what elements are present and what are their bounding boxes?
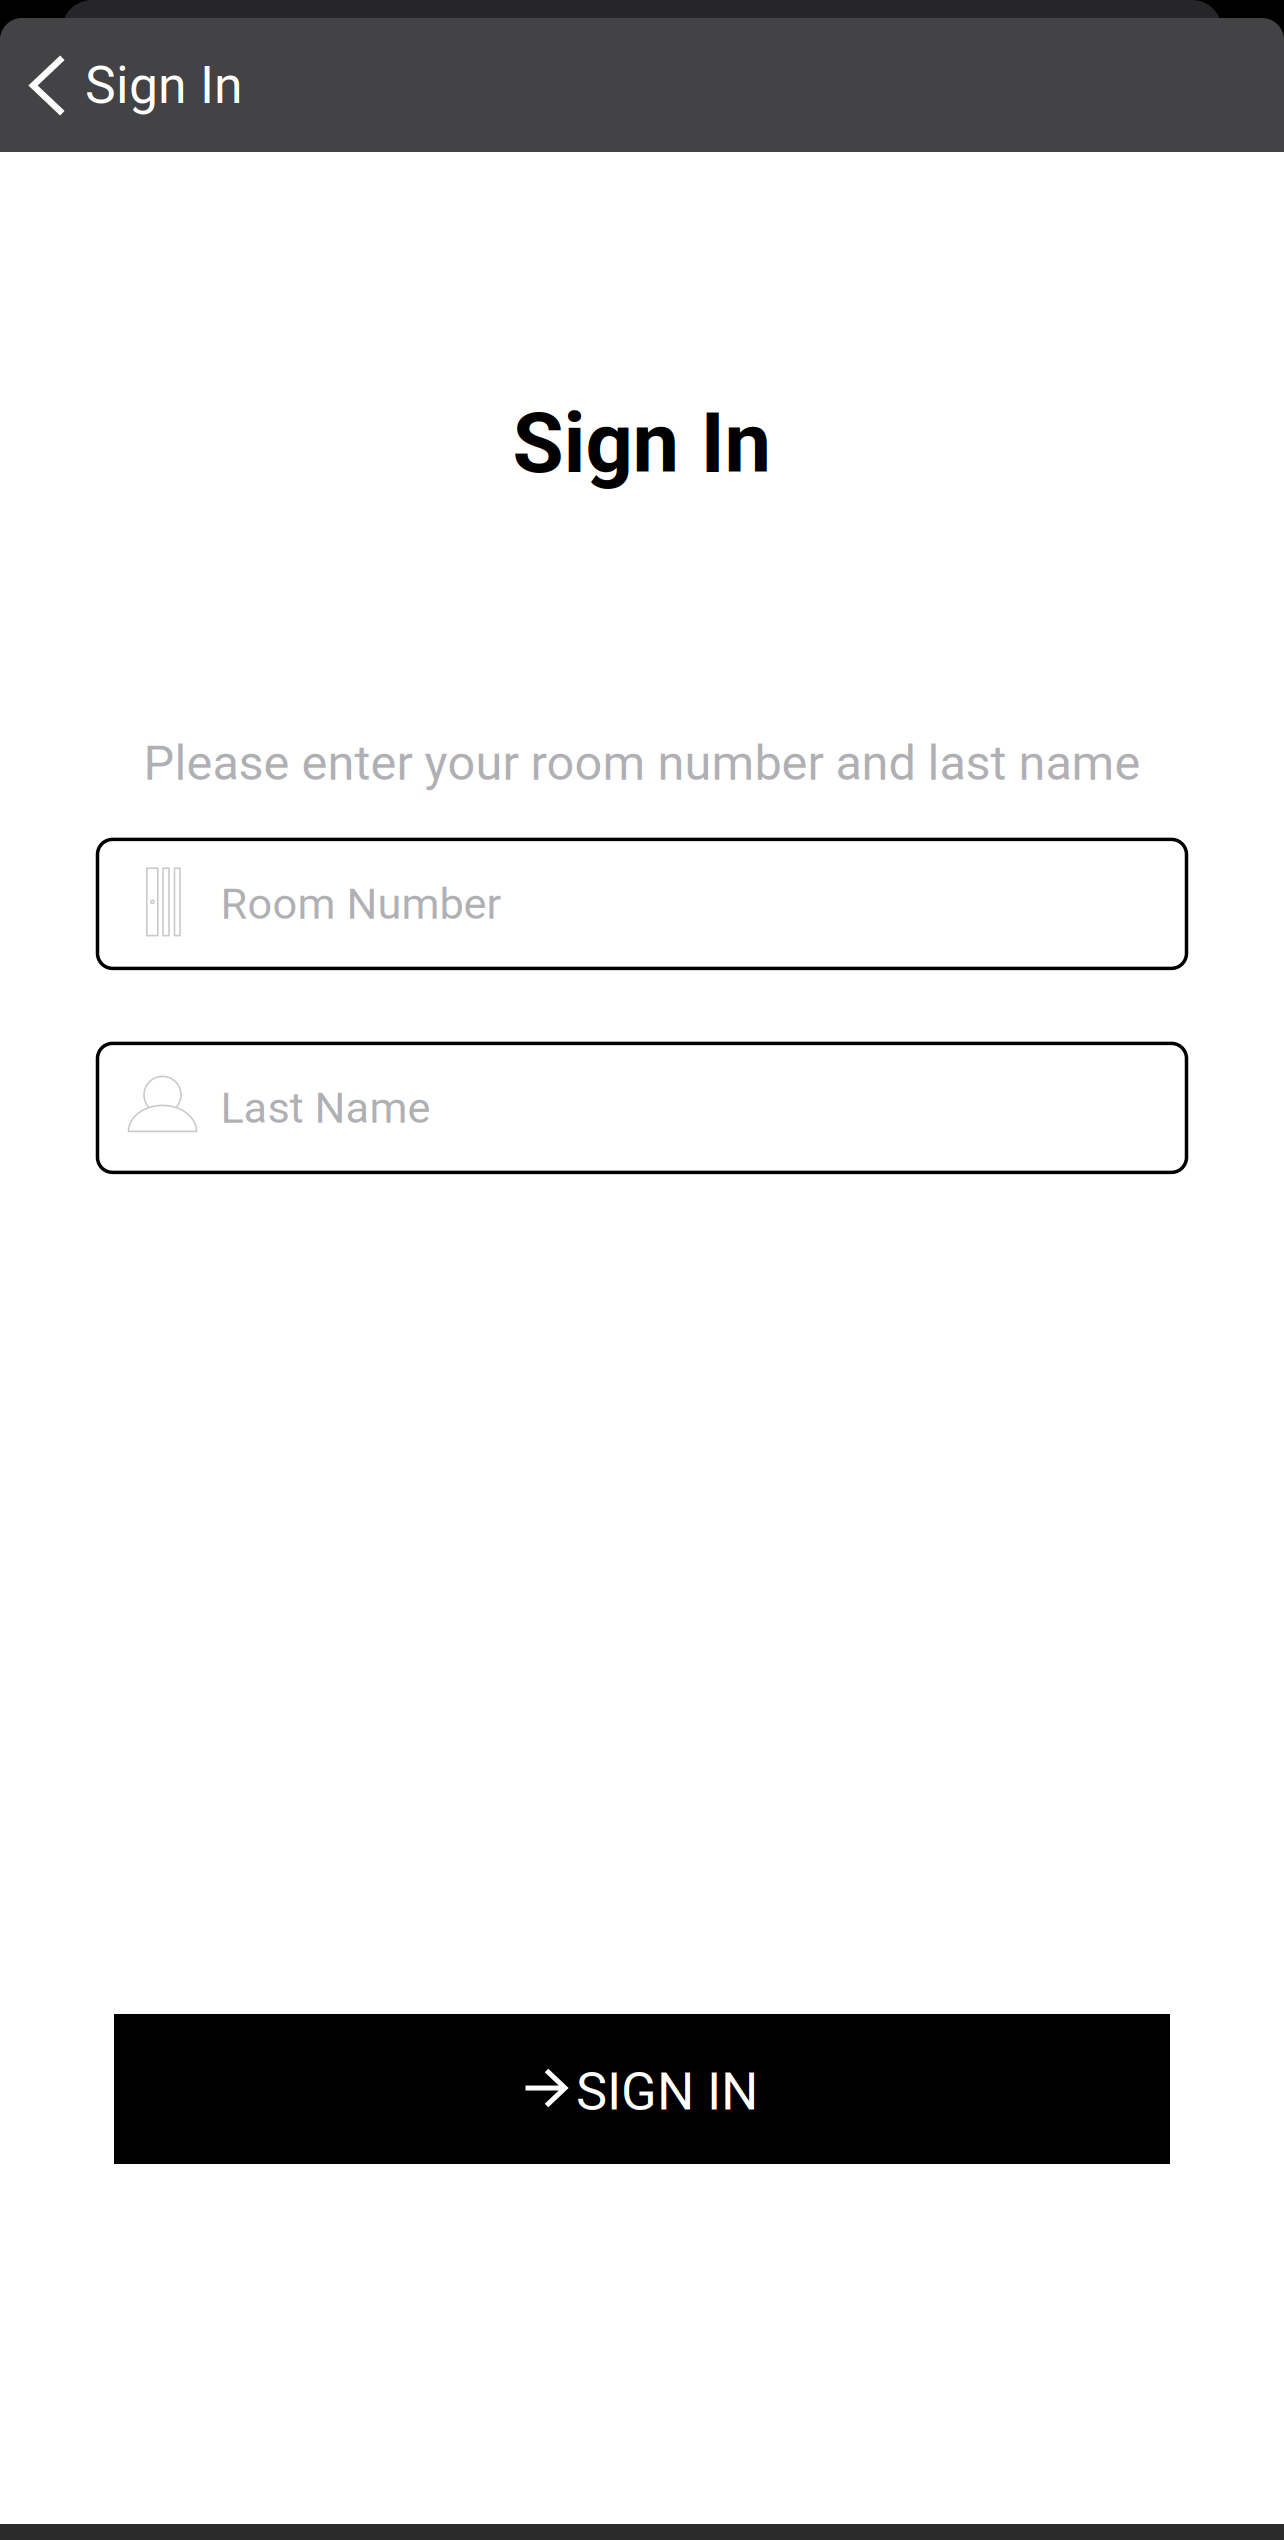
staticText: Sign In	[85, 55, 243, 116]
button[interactable]: Sign In	[0, 36, 256, 152]
staticText: Sign In	[512, 395, 771, 492]
staticText: Please enter your room number and last n…	[143, 734, 1140, 791]
staticText: Room Number	[220, 878, 501, 929]
staticText: Last Name	[220, 1082, 430, 1133]
button[interactable]: SIGN IN	[114, 2014, 1170, 2164]
button[interactable]: Last Name	[97, 1043, 1186, 1172]
staticText: SIGN IN	[576, 2061, 758, 2122]
button[interactable]: Room Number	[97, 839, 1186, 968]
